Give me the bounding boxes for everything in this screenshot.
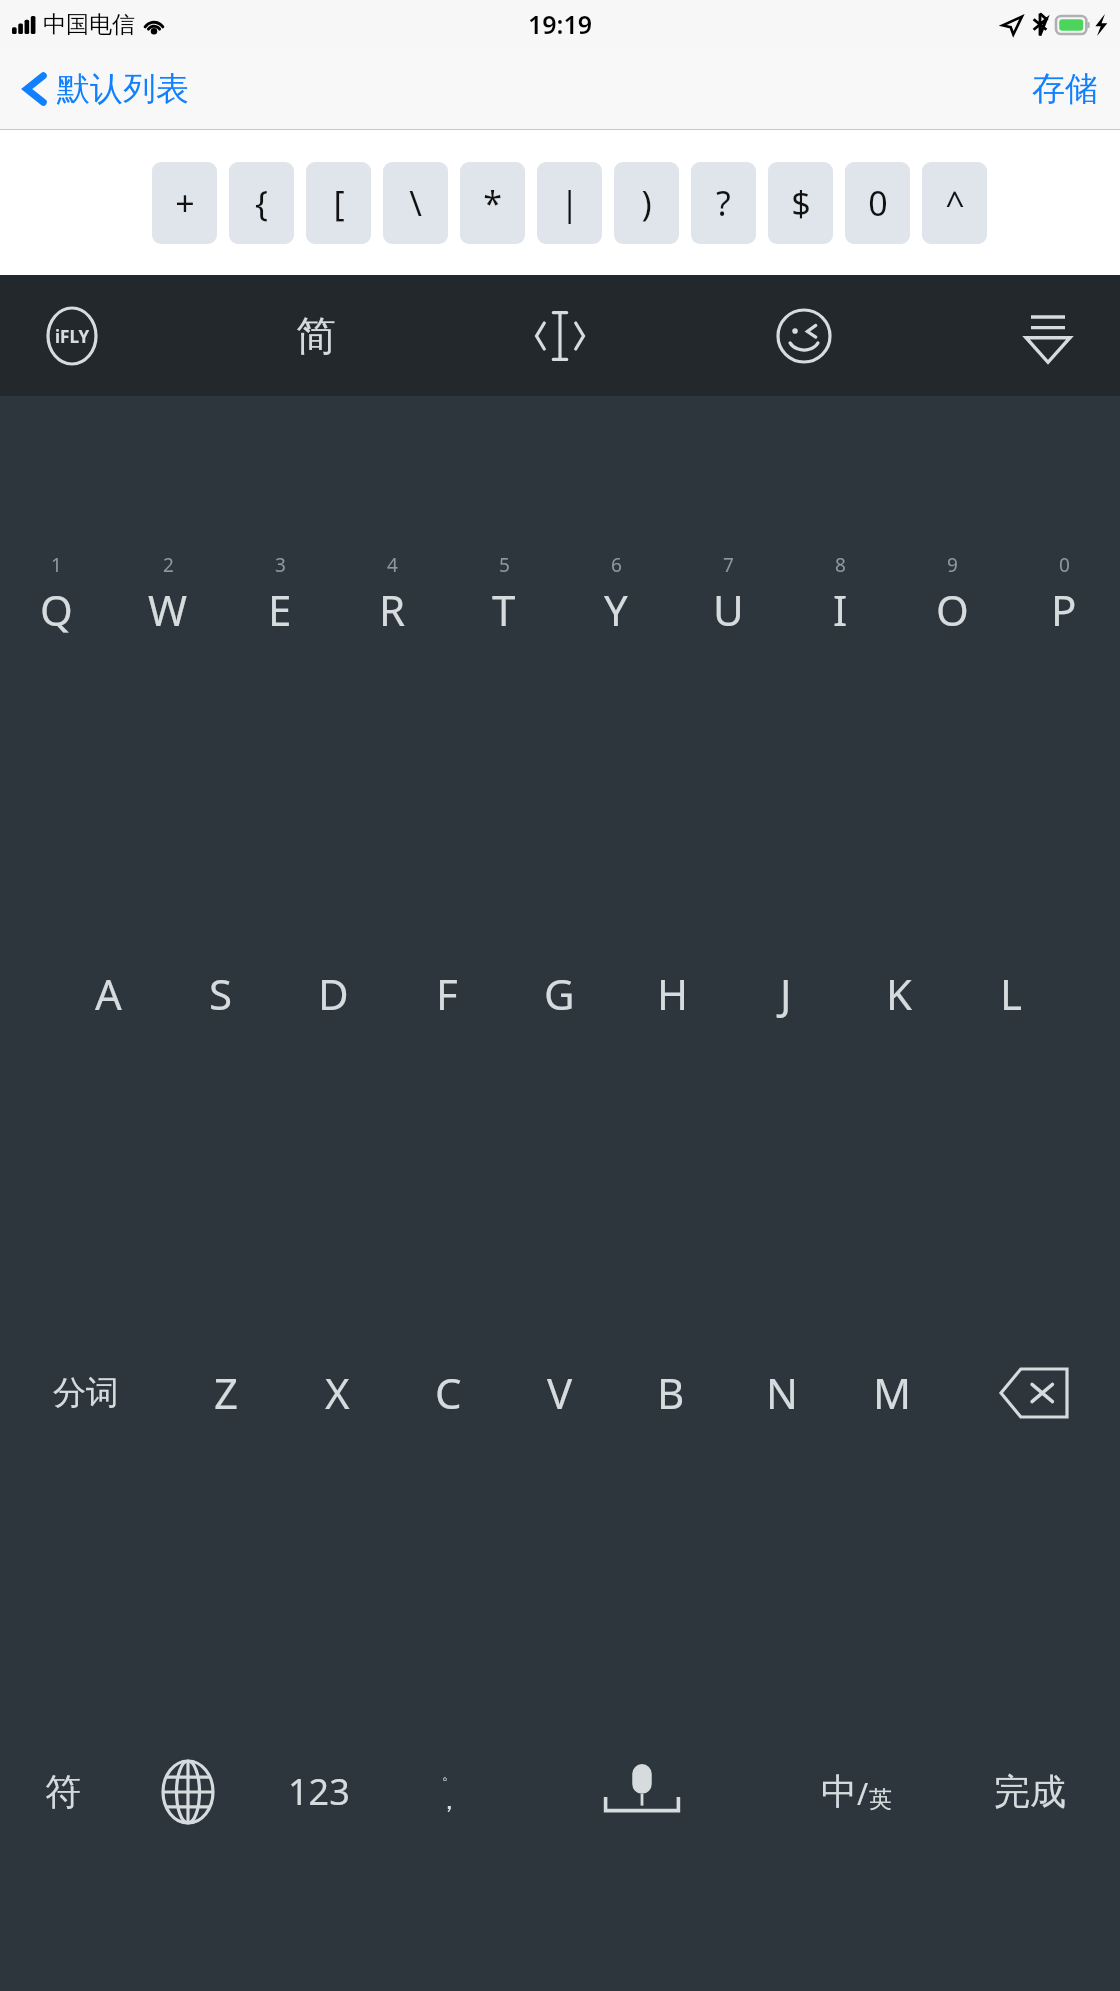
staticText: N	[766, 1364, 798, 1421]
button[interactable]: 默认列表	[22, 68, 201, 110]
button[interactable]: )	[614, 162, 679, 244]
button[interactable]: |	[537, 162, 602, 244]
button[interactable]: $	[768, 162, 833, 244]
staticText: 5	[499, 552, 510, 578]
staticText: {	[255, 180, 268, 226]
button[interactable]: F	[390, 794, 503, 1193]
staticText: C	[435, 1364, 462, 1421]
button[interactable]: G	[503, 794, 616, 1193]
staticText: ，	[436, 1784, 462, 1817]
button[interactable]: 9	[896, 396, 1008, 794]
button[interactable]: 存储	[1010, 58, 1120, 120]
staticText: 存储	[1032, 68, 1098, 110]
staticText: \	[409, 180, 422, 226]
staticText: V	[547, 1364, 573, 1421]
button[interactable]: M	[837, 1193, 948, 1592]
button[interactable]: 。	[387, 1592, 511, 1991]
staticText: S	[209, 965, 233, 1022]
staticText: 1	[51, 552, 62, 578]
button[interactable]: ^	[922, 162, 987, 244]
staticText: F	[436, 965, 458, 1022]
button[interactable]: 7	[672, 396, 784, 794]
button[interactable]: Voice input / space	[511, 1592, 772, 1991]
button[interactable]: Backspace	[948, 1193, 1120, 1592]
staticText: G	[544, 965, 575, 1022]
button[interactable]: J	[729, 794, 842, 1193]
button[interactable]: 6	[560, 396, 672, 794]
staticText: W	[148, 581, 188, 638]
staticText: 默认列表	[57, 68, 189, 110]
button[interactable]: ?	[691, 162, 756, 244]
staticText: Z	[214, 1364, 239, 1421]
staticText: 。	[442, 1766, 456, 1784]
staticText: U	[713, 581, 744, 638]
button[interactable]: 1	[0, 396, 112, 794]
button[interactable]: 4	[336, 396, 448, 794]
button[interactable]: C	[393, 1193, 504, 1592]
button[interactable]: iFLY voice	[34, 298, 110, 374]
button[interactable]: 分词	[0, 1193, 171, 1592]
staticText: I	[833, 581, 848, 638]
staticText: T	[492, 581, 516, 638]
button[interactable]: 123	[250, 1592, 387, 1991]
staticText: 3	[275, 552, 286, 578]
staticText: 7	[723, 552, 734, 578]
staticText: 6	[611, 552, 622, 578]
staticText: 英	[869, 1785, 892, 1814]
button[interactable]: L	[955, 794, 1068, 1193]
button[interactable]: A	[52, 794, 164, 1193]
button[interactable]: H	[616, 794, 729, 1193]
button[interactable]: 3	[224, 396, 336, 794]
button[interactable]: N	[726, 1193, 837, 1592]
staticText: Q	[40, 581, 73, 638]
button[interactable]: [	[306, 162, 371, 244]
staticText: 中	[821, 1769, 857, 1814]
staticText: +	[175, 180, 195, 226]
button[interactable]: Hide keyboard	[1010, 298, 1086, 374]
button[interactable]: 5	[448, 396, 560, 794]
staticText: 分词	[53, 1372, 119, 1414]
button[interactable]: Z	[171, 1193, 282, 1592]
button[interactable]: D	[277, 794, 390, 1193]
button[interactable]: 中	[772, 1592, 940, 1991]
button[interactable]: S	[164, 794, 277, 1193]
staticText: ^	[945, 180, 965, 226]
button[interactable]: K	[842, 794, 955, 1193]
staticText: /	[857, 1773, 869, 1814]
button[interactable]: {	[229, 162, 294, 244]
staticText: J	[780, 965, 792, 1022]
staticText: R	[379, 581, 406, 638]
staticText: B	[657, 1364, 685, 1421]
staticText: *	[483, 180, 502, 226]
button[interactable]: 符	[0, 1592, 125, 1991]
button[interactable]: Move cursor	[522, 298, 598, 374]
staticText: 9	[947, 552, 958, 578]
button[interactable]: \	[383, 162, 448, 244]
staticText: L	[1000, 965, 1023, 1022]
staticText: P	[1051, 581, 1077, 638]
staticText: 2	[163, 552, 174, 578]
staticText: 4	[387, 552, 398, 578]
staticText: K	[886, 965, 912, 1022]
button[interactable]: 2	[112, 396, 224, 794]
staticText: 0	[1059, 552, 1070, 578]
staticText: X	[325, 1364, 350, 1421]
staticText: 完成	[994, 1769, 1066, 1814]
staticText: 0	[868, 180, 888, 226]
staticText: 中国电信	[43, 10, 135, 39]
button[interactable]: 完成	[940, 1592, 1120, 1991]
button[interactable]: Switch language	[125, 1592, 250, 1991]
button[interactable]: B	[615, 1193, 726, 1592]
button[interactable]: Emoji	[766, 298, 842, 374]
button[interactable]: X	[282, 1193, 393, 1592]
button[interactable]: V	[504, 1193, 615, 1592]
button[interactable]: +	[152, 162, 217, 244]
staticText: iFLY	[55, 325, 90, 348]
button[interactable]: 8	[784, 396, 896, 794]
button[interactable]: Simplified Chinese	[278, 298, 354, 374]
button[interactable]: 0	[1008, 396, 1120, 794]
button[interactable]: 0	[845, 162, 910, 244]
staticText: ?	[716, 180, 731, 226]
button[interactable]: *	[460, 162, 525, 244]
staticText: H	[657, 965, 689, 1022]
